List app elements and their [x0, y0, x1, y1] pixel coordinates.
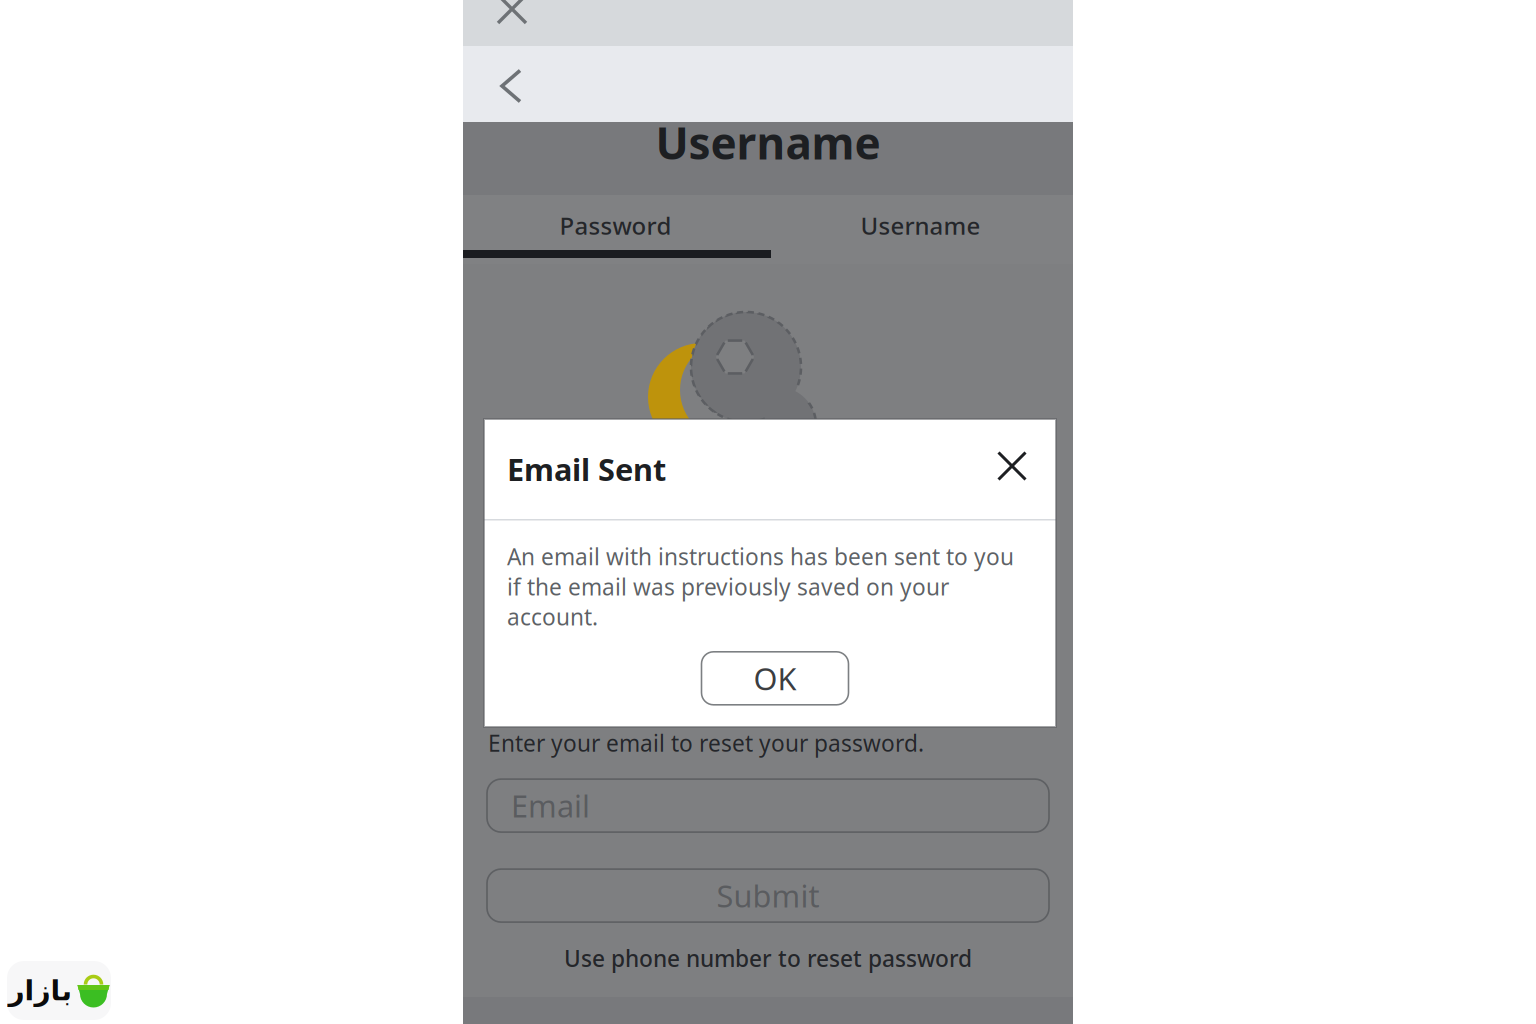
- staticText: An email with instructions has been sent…: [507, 541, 1014, 632]
- staticText: Email: [511, 785, 590, 826]
- button[interactable]: Close: [463, 0, 537, 46]
- staticText: Use phone number to reset password: [564, 943, 972, 973]
- staticText: Submit: [716, 875, 819, 916]
- staticText: بازار: [8, 975, 72, 1006]
- button[interactable]: OK: [696, 652, 843, 705]
- button[interactable]: Submit: [487, 869, 1049, 922]
- staticText: Enter your email to reset your password.: [488, 728, 924, 758]
- button[interactable]: Close dialog: [987, 446, 1033, 492]
- button[interactable]: Password: [463, 195, 768, 250]
- staticText: Username: [860, 210, 980, 241]
- staticText: Password: [559, 210, 671, 241]
- staticText: Username: [655, 113, 880, 172]
- button[interactable]: Username: [768, 195, 1073, 250]
- staticText: OK: [753, 658, 796, 699]
- button[interactable]: Back: [463, 46, 539, 122]
- button[interactable]: بازار: [7, 961, 111, 1020]
- button[interactable]: Use phone number to reset password: [463, 938, 1073, 978]
- staticText: Email Sent: [507, 449, 666, 489]
